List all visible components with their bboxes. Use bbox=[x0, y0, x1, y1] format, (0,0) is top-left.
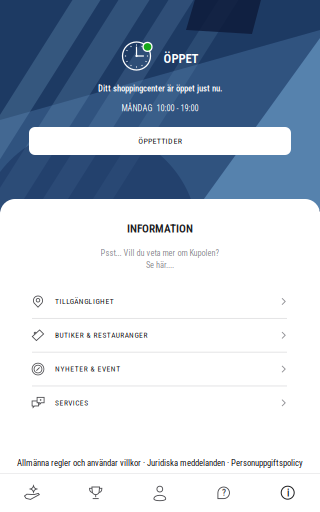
staticText: Allmänna regler och användar villkor · J… bbox=[17, 458, 303, 468]
button[interactable]: BUTIKER & RESTAURANGER bbox=[0, 319, 320, 353]
staticText: SERVICES bbox=[55, 398, 88, 407]
staticText: Ditt shoppingcenter är öppet just nu. bbox=[98, 83, 222, 94]
staticText: MÅNDAG 10:00 - 19:00 bbox=[121, 104, 198, 113]
staticText: ? bbox=[222, 487, 226, 498]
button[interactable]: Tävlingar bbox=[64, 474, 128, 512]
staticText: INFORMATION bbox=[127, 222, 193, 235]
staticText: NYHETER & EVENT bbox=[55, 365, 120, 373]
button[interactable]: SERVICES bbox=[0, 386, 320, 419]
staticText: ÖPPET bbox=[163, 51, 198, 66]
staticText: Psst... Vill du veta mer om Kupolen? bbox=[100, 248, 219, 258]
button[interactable]: Mitt konto bbox=[128, 474, 192, 512]
staticText: BUTIKER & RESTAURANGER bbox=[55, 331, 147, 340]
staticText: i bbox=[287, 487, 289, 499]
button[interactable]: Information bbox=[256, 474, 320, 512]
staticText: ÖPPETTIDER bbox=[138, 136, 182, 146]
button[interactable]: ÖPPETTIDER bbox=[29, 127, 291, 155]
staticText: Se här.... bbox=[146, 260, 174, 270]
button[interactable]: Hjälp bbox=[192, 474, 256, 512]
staticText: TILLGÄNGLIGHET bbox=[55, 297, 114, 306]
button[interactable]: NYHETER & EVENT bbox=[0, 353, 320, 386]
button[interactable]: Erbjudanden bbox=[0, 474, 64, 512]
button[interactable]: TILLGÄNGLIGHET bbox=[0, 285, 320, 319]
